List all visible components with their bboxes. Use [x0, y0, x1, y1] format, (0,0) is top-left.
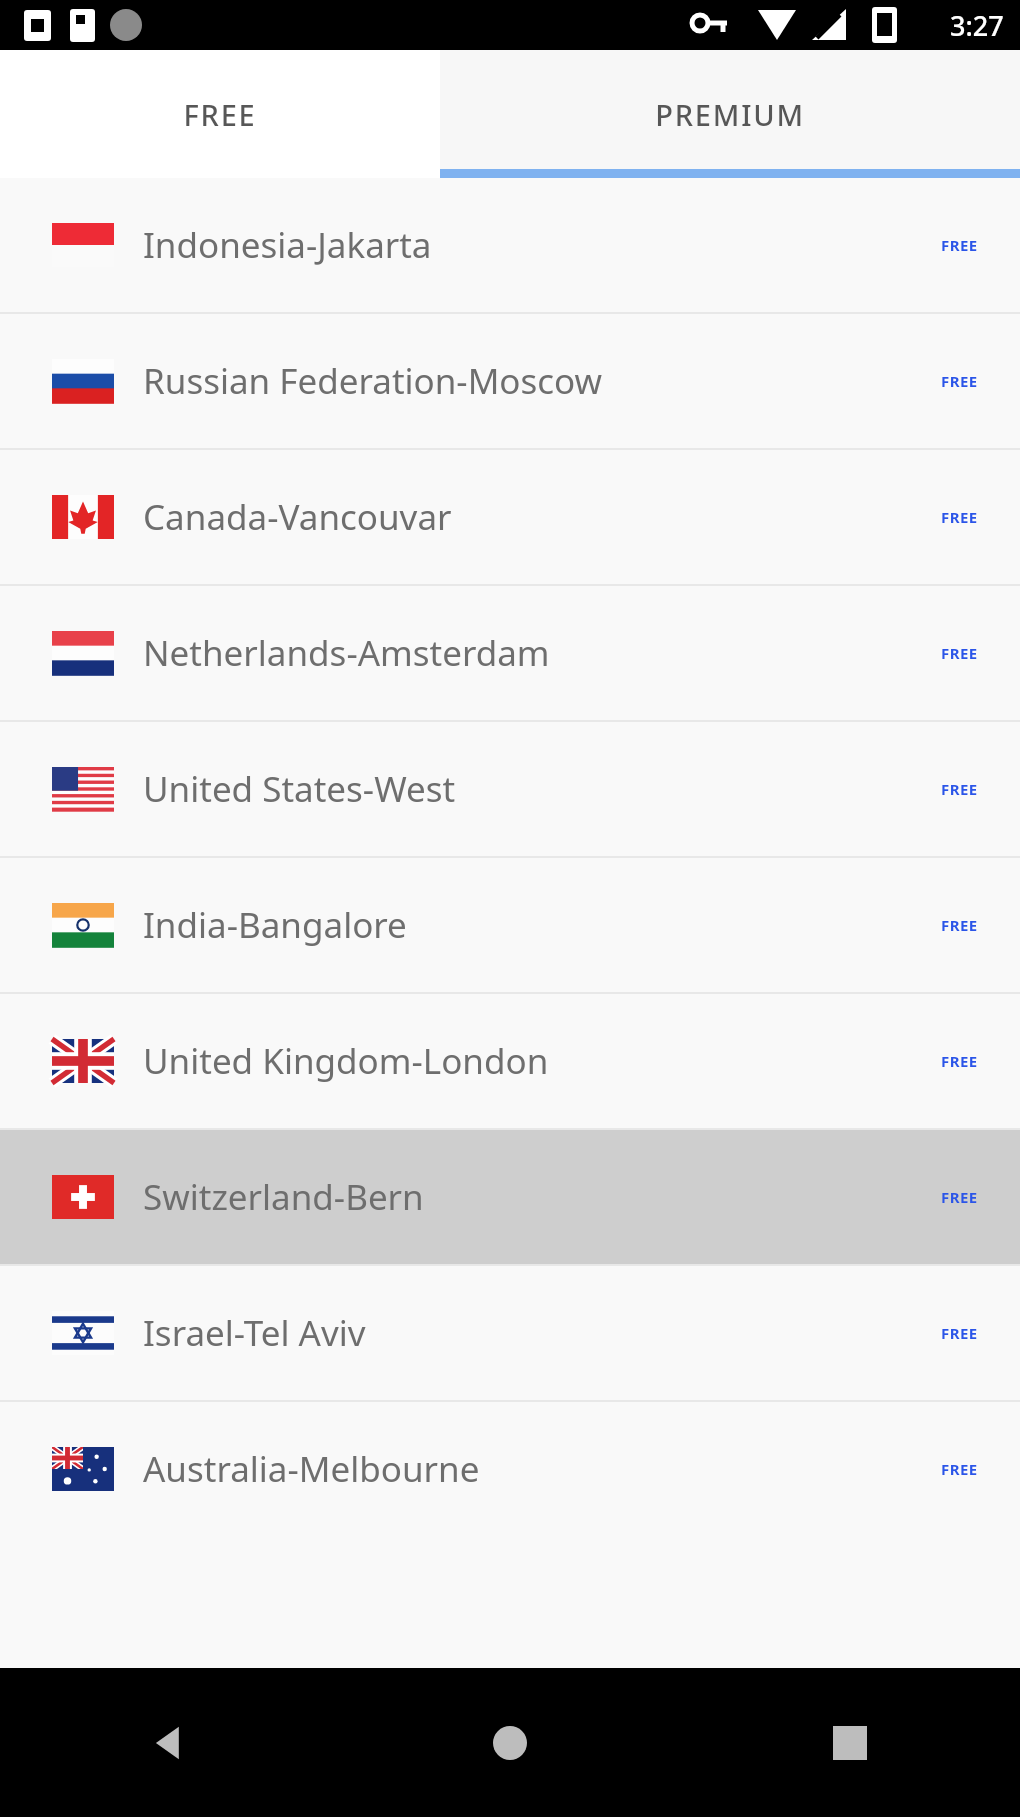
staticText: Indonesia-Jakarta	[143, 221, 432, 269]
staticText: Australia-Melbourne	[143, 1445, 480, 1493]
staticText: FREE	[941, 1187, 978, 1207]
button[interactable]: Netherlands-Amsterdam	[0, 586, 1020, 720]
button[interactable]: FREE	[0, 50, 440, 178]
staticText: Netherlands-Amsterdam	[143, 629, 550, 677]
button[interactable]: Canada-Vancouvar	[0, 450, 1020, 584]
button[interactable]: Recent apps	[680, 1668, 1020, 1817]
staticText: FREE	[183, 95, 257, 134]
staticText: FREE	[941, 1459, 978, 1479]
staticText: FREE	[941, 915, 978, 935]
staticText: PREMIUM	[655, 95, 805, 134]
staticText: 3:27	[950, 7, 1004, 44]
staticText: Canada-Vancouvar	[143, 493, 452, 541]
button[interactable]: United Kingdom-London	[0, 994, 1020, 1128]
button[interactable]: United States-West	[0, 722, 1020, 856]
staticText: FREE	[941, 371, 978, 391]
button[interactable]: Back	[0, 1668, 340, 1817]
staticText: FREE	[941, 643, 978, 663]
staticText: United Kingdom-London	[143, 1037, 549, 1085]
staticText: India-Bangalore	[143, 901, 407, 949]
staticText: United States-West	[143, 765, 456, 813]
staticText: Israel-Tel Aviv	[143, 1309, 366, 1357]
button[interactable]: Russian Federation-Moscow	[0, 314, 1020, 448]
button[interactable]: Home	[340, 1668, 680, 1817]
staticText: FREE	[941, 1051, 978, 1071]
button[interactable]: PREMIUM	[440, 50, 1020, 178]
staticText: Russian Federation-Moscow	[143, 357, 603, 405]
staticText: FREE	[941, 235, 978, 255]
button[interactable]: Switzerland-Bern	[0, 1130, 1020, 1264]
staticText: FREE	[941, 779, 978, 799]
button[interactable]: Israel-Tel Aviv	[0, 1266, 1020, 1400]
button[interactable]: Australia-Melbourne	[0, 1402, 1020, 1536]
button[interactable]: India-Bangalore	[0, 858, 1020, 992]
staticText: FREE	[941, 1323, 978, 1343]
staticText: Switzerland-Bern	[143, 1173, 424, 1221]
button[interactable]: Indonesia-Jakarta	[0, 178, 1020, 312]
staticText: FREE	[941, 507, 978, 527]
